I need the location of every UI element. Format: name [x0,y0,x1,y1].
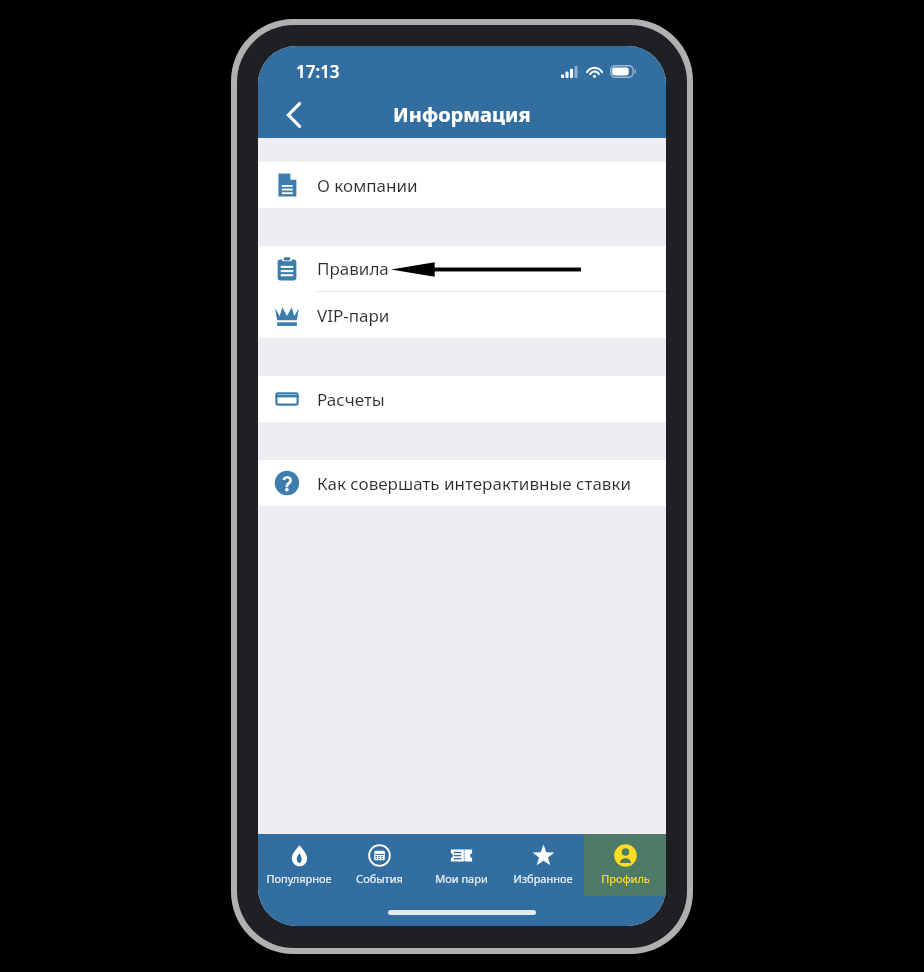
staticText: 17:13 [296,60,340,83]
button[interactable]: События [339,834,420,896]
staticText: Избранное [513,871,573,886]
button[interactable]: Назад [272,93,316,137]
staticText: Как совершать интерактивные ставки [317,472,632,495]
staticText: Правила [317,257,389,280]
button[interactable]: Профиль [584,834,666,896]
button[interactable]: Мои пари [420,834,502,896]
button[interactable]: Как совершать интерактивные ставки [258,460,666,506]
staticText: Профиль [601,871,650,886]
staticText: О компании [317,174,418,197]
staticText: Информация [393,101,531,128]
button[interactable]: Расчеты [258,376,666,422]
staticText: Популярное [266,871,332,886]
staticText: VIP-пари [317,304,390,327]
button[interactable]: VIP-пари [258,292,666,338]
staticText: Мои пари [435,871,488,886]
button[interactable]: Избранное [502,834,584,896]
button[interactable]: О компании [258,162,666,208]
button[interactable]: Правила [258,246,666,292]
staticText: События [356,871,403,886]
staticText: Расчеты [317,388,385,411]
button[interactable]: Популярное [258,834,339,896]
